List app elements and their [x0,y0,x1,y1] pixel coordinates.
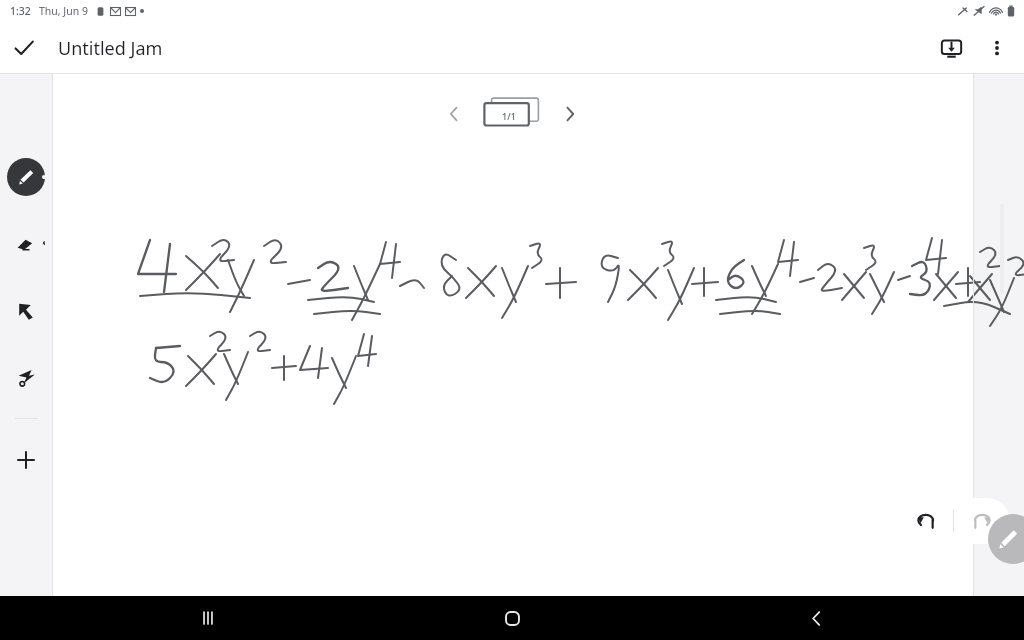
button[interactable]: Back [664,596,968,640]
button[interactable]: Eraser [7,226,45,264]
staticText: Thu, Jun 9 [39,4,88,18]
button[interactable]: Done [0,24,48,72]
button[interactable]: Previous frame [432,92,476,136]
button[interactable]: Next frame [548,92,592,136]
staticText: Untitled Jam [58,36,163,61]
button[interactable]: Recent apps [56,596,360,640]
button[interactable]: Untitled Jam [56,32,165,65]
button[interactable]: Pen [7,158,45,196]
button[interactable]: Select [7,292,45,330]
button[interactable]: Pen tool [988,514,1024,564]
button[interactable]: 1/1 [476,92,548,136]
button[interactable]: Cast to display [928,25,974,71]
button[interactable]: Add [7,441,45,479]
button[interactable]: Undo [898,498,953,544]
button[interactable]: Redo [954,498,1010,544]
button[interactable]: More options [974,25,1020,71]
staticText: 1:32 [10,4,31,18]
button[interactable]: Laser pointer [7,358,45,396]
staticText: 1/1 [502,110,516,122]
button[interactable]: Home [360,596,664,640]
